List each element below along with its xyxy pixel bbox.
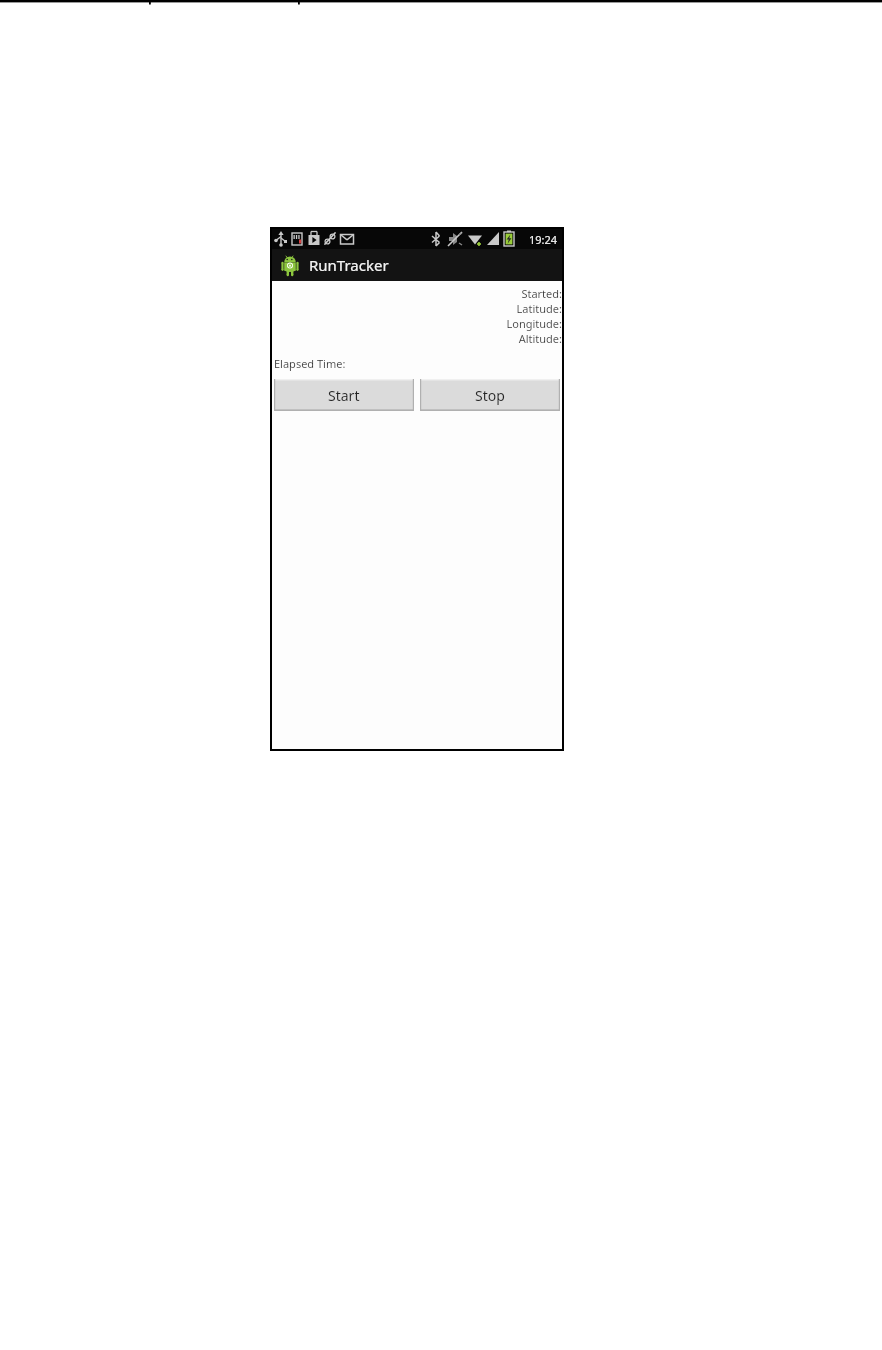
staticText: Started: <box>488 286 562 301</box>
button[interactable]: RunTracker app icon <box>272 249 562 281</box>
staticText: Stop <box>475 386 505 405</box>
staticText: Latitude: <box>488 301 562 316</box>
staticText: RunTracker <box>309 255 389 275</box>
button[interactable]: Start <box>274 379 414 411</box>
staticText: Altitude: <box>488 331 562 346</box>
staticText: Start <box>328 386 360 405</box>
staticText: 19:24 <box>529 232 558 247</box>
staticText: Elapsed Time: <box>274 356 346 371</box>
other: RunTracker app icon <box>279 254 301 276</box>
staticText: Longitude: <box>488 316 562 331</box>
button[interactable]: Stop <box>420 379 560 411</box>
